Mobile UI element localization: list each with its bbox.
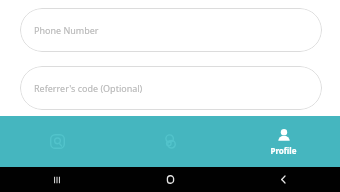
button[interactable]: Home (114, 167, 227, 192)
button[interactable]: Recent apps (0, 167, 114, 192)
button[interactable]: Referrer's code (Optional) (20, 66, 322, 110)
button[interactable]: Back (227, 167, 340, 192)
staticText: Profile (270, 145, 297, 156)
button[interactable]: Profile (227, 116, 340, 167)
staticText: Referrer's code (Optional) (34, 82, 143, 94)
button[interactable]: Phone Number (20, 8, 322, 52)
staticText: Phone Number (34, 24, 99, 36)
